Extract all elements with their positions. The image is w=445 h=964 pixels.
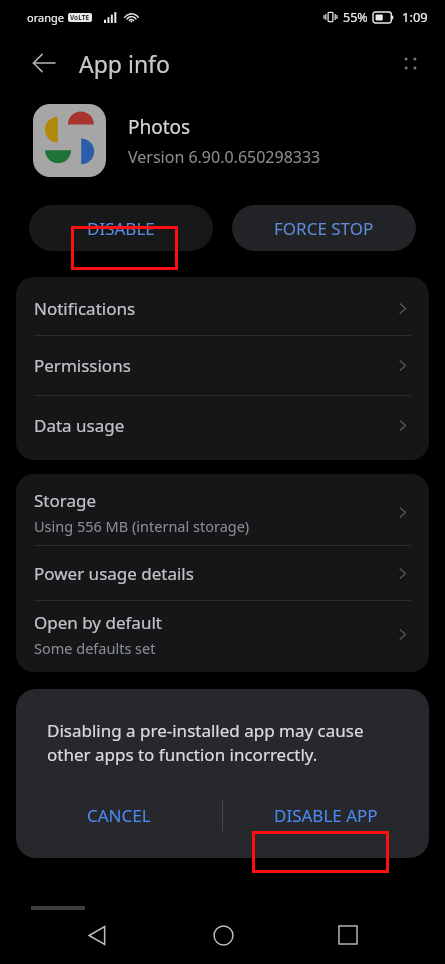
staticText: VoLTE [70,13,90,22]
staticText: Storage [34,489,97,512]
staticText: 1:09 [402,8,428,26]
staticText: DISABLE [87,217,155,240]
button[interactable]: DISABLE APP [223,790,429,840]
button[interactable]: Home [195,907,251,963]
staticText: Notifications [34,297,136,320]
button[interactable]: More options [386,39,434,87]
staticText: FORCE STOP [274,217,374,240]
button[interactable]: Back [69,907,125,963]
staticText: Power usage details [34,562,194,585]
staticText: Photos [128,114,191,140]
staticText: CANCEL [87,804,151,827]
button[interactable]: Notifications [16,282,429,335]
button[interactable]: FORCE STOP [232,205,416,251]
staticText: Some defaults set [34,638,156,658]
button[interactable]: CANCEL [16,790,222,840]
button[interactable]: Data usage [16,396,429,455]
button[interactable]: Back [21,40,67,86]
staticText: Open by default [34,611,162,634]
button[interactable]: Power usage details [16,546,429,600]
button[interactable]: Open by default [16,601,429,667]
staticText: Using 556 MB (internal storage) [34,516,250,536]
staticText: Data usage [34,414,125,437]
staticText: orange [27,10,64,25]
button[interactable]: Storage [16,479,429,545]
button[interactable]: DISABLE [29,205,213,251]
staticText: DISABLE APP [274,804,378,827]
staticText: App info [79,48,170,79]
staticText: Disabling a pre-installed app may cause … [47,719,391,766]
button[interactable]: Permissions [16,336,429,395]
staticText: 55% [343,9,368,26]
button[interactable]: Recents [320,907,376,963]
staticText: Permissions [34,354,131,377]
staticText: Version 6.90.0.650298333 [128,146,321,168]
